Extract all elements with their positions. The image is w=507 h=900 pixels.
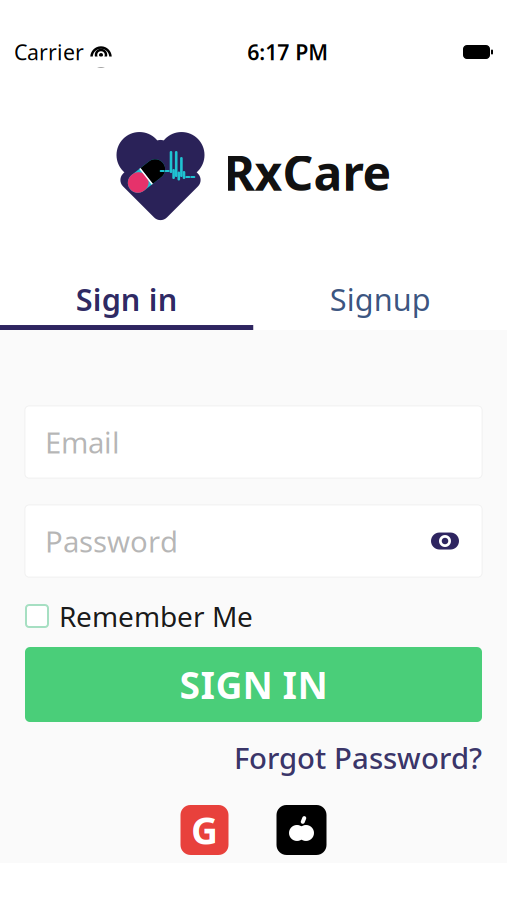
staticText: Forgot Password? bbox=[234, 738, 482, 777]
staticText: G bbox=[191, 805, 218, 855]
staticText: Carrier bbox=[14, 38, 84, 66]
staticText: Signup bbox=[330, 279, 431, 319]
button[interactable]: SIGN IN bbox=[25, 647, 482, 722]
staticText: Password bbox=[45, 521, 178, 560]
staticText: Remember Me bbox=[59, 597, 253, 635]
staticText: 6:17 PM bbox=[247, 38, 328, 66]
button[interactable]: Forgot Password? bbox=[234, 734, 482, 781]
button[interactable]: Sign in with Apple bbox=[276, 805, 326, 855]
button[interactable]: Signup bbox=[253, 273, 507, 325]
staticText: RxCare bbox=[223, 140, 391, 204]
staticText: SIGN IN bbox=[179, 660, 327, 709]
button[interactable]: Show password bbox=[428, 526, 462, 556]
button[interactable]: Sign in with Google bbox=[180, 805, 228, 855]
button[interactable]: Remember Me bbox=[0, 599, 507, 633]
button[interactable]: Sign in bbox=[0, 273, 253, 325]
staticText: Email bbox=[45, 422, 120, 461]
staticText: Sign in bbox=[76, 279, 178, 319]
